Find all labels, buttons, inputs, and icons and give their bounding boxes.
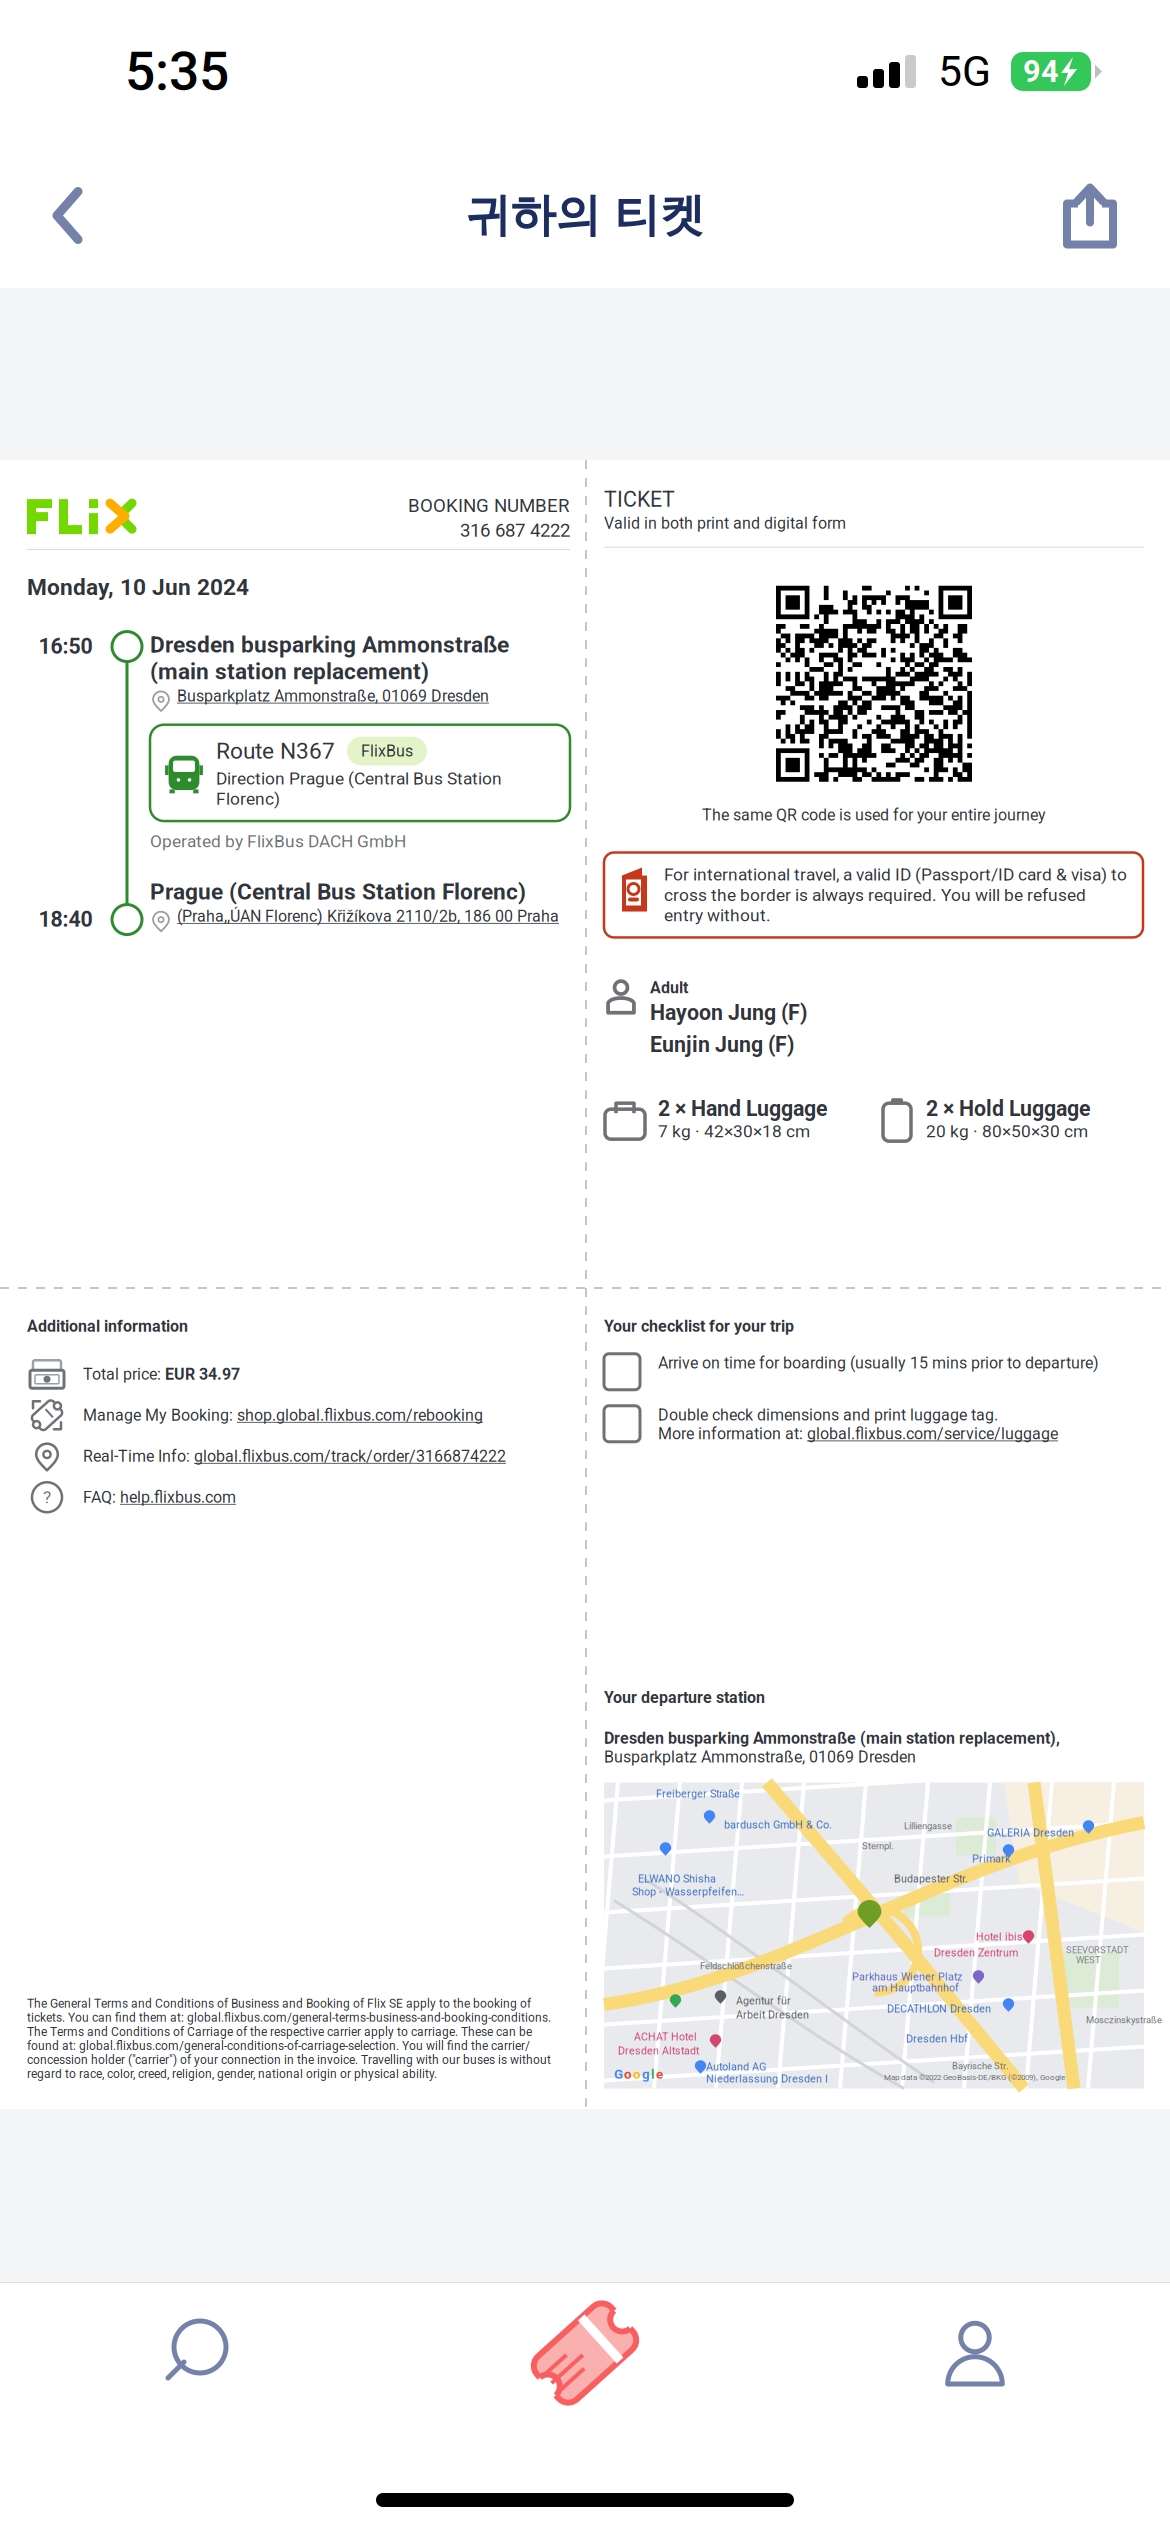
staticText: Route N367	[216, 738, 335, 764]
staticText: Sternpl.	[862, 1840, 893, 1851]
staticText: Budapester Str.	[894, 1872, 968, 1885]
staticText: More information at:	[658, 1424, 807, 1443]
staticText: Total price:	[83, 1365, 165, 1384]
staticText: Monday, 10 Jun 2024	[27, 574, 249, 601]
staticText: Valid in both print and digital form	[604, 514, 846, 533]
staticText: WEST	[1076, 1954, 1101, 1965]
staticText: Dresden busparking Ammonstraße (main sta…	[604, 1729, 1060, 1748]
staticText: The same QR code is used for your entire…	[702, 806, 1046, 824]
staticText: Niederlassung Dresden I	[706, 2072, 828, 2085]
button[interactable]: Tickets	[390, 2283, 780, 2423]
staticText: Eunjin Jung (F)	[650, 1032, 794, 1057]
staticText: Freiberger Straße	[656, 1787, 740, 1800]
staticText: SEEVORSTADT	[1066, 1944, 1129, 1955]
staticText: Feldschlößchenstraße	[700, 1960, 792, 1971]
staticText: shop.global.flixbus.com/rebooking	[237, 1406, 483, 1425]
staticText: 5:35	[125, 40, 229, 103]
staticText: 20 kg · 80×50×30 cm	[926, 1121, 1088, 1141]
staticText: The General Terms and Conditions of Busi…	[27, 1997, 551, 2081]
staticText: Dresden busparking Ammonstraße (main sta…	[150, 632, 509, 685]
staticText: (Praha,,ÚAN Florenc) Křižíkova 2110/2b, …	[177, 907, 559, 926]
staticText: FAQ:	[83, 1488, 120, 1507]
staticText: 16:50	[38, 634, 92, 659]
staticText: 94	[1023, 53, 1059, 89]
staticText: Your checklist for your trip	[604, 1317, 794, 1336]
staticText: Parkhaus Wiener Platz	[852, 1970, 962, 1983]
button[interactable]: Double check dimensions	[604, 1406, 640, 1442]
staticText: Mosczinskystraße	[1086, 2014, 1162, 2025]
staticText: e	[656, 2066, 663, 2082]
staticText: Your departure station	[604, 1688, 765, 1707]
staticText: ?	[43, 1487, 51, 1507]
staticText: l	[651, 2066, 655, 2082]
staticText: Arrive on time for boarding (usually 15 …	[658, 1354, 1099, 1373]
staticText: Map data ©2022 GeoBasis-DE/BKG (©2009), …	[884, 2072, 1065, 2082]
staticText: o	[633, 2066, 641, 2082]
staticText: g	[642, 2066, 650, 2082]
staticText: Double check dimensions and print luggag…	[658, 1406, 998, 1425]
staticText: EUR 34.97	[165, 1365, 240, 1384]
staticText: help.flixbus.com	[120, 1488, 236, 1507]
staticText: Operated by FlixBus DACH GmbH	[150, 831, 406, 851]
staticText: Autoland AG	[706, 2060, 766, 2073]
staticText: Manage My Booking:	[83, 1406, 237, 1425]
staticText: 귀하의 티켓	[465, 187, 704, 244]
staticText: Agentur für	[736, 1994, 791, 2007]
staticText: Shop - Wasserpfeifen…	[632, 1885, 744, 1898]
staticText: Real-Time Info:	[83, 1447, 194, 1466]
staticText: BOOKING NUMBER	[408, 495, 570, 516]
staticText: Adult	[650, 978, 688, 997]
staticText: 2 × Hand Luggage	[658, 1096, 828, 1121]
staticText: Lilliengasse	[904, 1820, 952, 1831]
staticText: Busparkplatz Ammonstraße, 01069 Dresden	[604, 1748, 916, 1767]
button[interactable]: Search	[0, 2283, 390, 2423]
staticText: 18:40	[38, 907, 92, 932]
staticText: Dresden Zentrum	[934, 1946, 1018, 1959]
staticText: G	[614, 2066, 623, 2082]
staticText: 316 687 4222	[460, 519, 570, 541]
button[interactable]: Profile	[780, 2283, 1170, 2423]
staticText: bardusch GmbH & Co.	[724, 1818, 832, 1831]
staticText: Hayoon Jung (F)	[650, 1000, 807, 1025]
staticText: am Hauptbahnhof	[872, 1981, 959, 1994]
button[interactable]: Share	[1038, 154, 1142, 276]
staticText: 2 × Hold Luggage	[926, 1096, 1091, 1121]
staticText: Hotel ibis	[976, 1930, 1023, 1943]
staticText: global.flixbus.com/service/luggage	[807, 1424, 1058, 1443]
button[interactable]: Back	[28, 160, 108, 270]
staticText: Dresden Altstadt	[618, 2044, 699, 2057]
staticText: Prague (Central Bus Station Florenc)	[150, 878, 526, 905]
staticText: For international travel, a valid ID (Pa…	[664, 864, 1127, 925]
staticText: Direction Prague (Central Bus Station Fl…	[216, 768, 502, 809]
staticText: Primark	[972, 1852, 1010, 1865]
staticText: Bayrische Str.	[952, 2060, 1008, 2071]
staticText: global.flixbus.com/track/order/316687422…	[194, 1447, 506, 1466]
staticText: Busparkplatz Ammonstraße, 01069 Dresden	[177, 687, 489, 705]
staticText: GALERIA Dresden	[987, 1826, 1074, 1839]
staticText: ELWANO Shisha	[638, 1872, 716, 1885]
staticText: TICKET	[604, 487, 675, 512]
button[interactable]: Arrive on time for boarding	[604, 1354, 640, 1390]
staticText: Additional information	[27, 1317, 188, 1336]
staticText: Dresden Hbf	[906, 2032, 968, 2045]
staticText: 5G	[938, 46, 991, 96]
staticText: DECATHLON Dresden	[887, 2002, 991, 2015]
staticText: Arbeit Dresden	[736, 2008, 809, 2021]
staticText: FlixBus	[361, 742, 413, 760]
staticText: ACHAT Hotel	[634, 2030, 697, 2043]
staticText: 7 kg · 42×30×18 cm	[658, 1121, 810, 1141]
staticText: o	[624, 2066, 632, 2082]
